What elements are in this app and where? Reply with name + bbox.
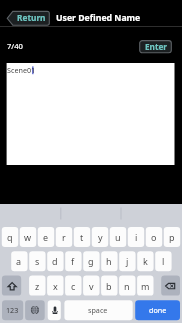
button[interactable]: e <box>38 227 54 247</box>
staticText: z <box>35 280 40 292</box>
button[interactable]: Shift <box>2 276 21 296</box>
staticText: e <box>43 231 49 243</box>
button[interactable]: Dictation <box>48 300 61 320</box>
button[interactable]: k <box>137 251 153 271</box>
staticText: Enter <box>145 41 168 52</box>
button[interactable]: i <box>128 227 144 247</box>
staticText: done <box>149 305 167 315</box>
staticText: space <box>88 305 108 315</box>
staticText: x <box>53 280 58 292</box>
staticText: s <box>35 255 40 267</box>
staticText: 7/40 <box>7 41 23 51</box>
staticText: n <box>124 280 130 292</box>
button[interactable]: Return <box>7 11 50 26</box>
staticText: Scene01 <box>7 65 36 75</box>
button[interactable]: r <box>56 227 72 247</box>
button[interactable]: 123 <box>2 300 23 320</box>
staticText: f <box>71 255 75 267</box>
button[interactable]: g <box>83 251 99 271</box>
button[interactable]: t <box>74 227 90 247</box>
button[interactable]: s <box>29 251 45 271</box>
button[interactable]: u <box>110 227 126 247</box>
staticText: k <box>143 255 148 267</box>
staticText: d <box>52 255 58 267</box>
button[interactable]: space <box>64 300 132 320</box>
button[interactable] <box>7 63 175 165</box>
staticText: v <box>89 280 94 292</box>
button[interactable]: a <box>11 251 27 271</box>
staticText: p <box>169 231 175 243</box>
staticText: u <box>115 231 121 243</box>
staticText: w <box>24 231 32 243</box>
staticText: g <box>88 255 94 267</box>
button[interactable]: q <box>2 227 18 247</box>
button[interactable]: j <box>119 251 135 271</box>
button[interactable]: v <box>83 276 99 296</box>
staticText: 123 <box>6 305 19 315</box>
button[interactable]: h <box>101 251 117 271</box>
staticText: t <box>80 231 84 243</box>
staticText: b <box>106 280 112 292</box>
button[interactable]: m <box>137 276 153 296</box>
button[interactable]: l <box>155 251 171 271</box>
staticText: Return <box>17 12 46 23</box>
button[interactable]: z <box>29 276 45 296</box>
button[interactable]: w <box>20 227 36 247</box>
button[interactable]: f <box>65 251 81 271</box>
button[interactable]: Switch keyboard <box>25 300 45 320</box>
staticText: c <box>71 280 76 292</box>
staticText: i <box>135 231 138 243</box>
staticText: User Defined Name <box>56 12 141 24</box>
staticText: r <box>62 231 66 243</box>
button[interactable]: b <box>101 276 117 296</box>
button[interactable]: x <box>47 276 63 296</box>
staticText: o <box>151 231 157 243</box>
button[interactable]: done <box>135 300 180 320</box>
staticText: y <box>98 231 103 243</box>
button[interactable]: p <box>164 227 180 247</box>
staticText: j <box>126 255 129 267</box>
staticText: l <box>162 255 165 267</box>
button[interactable]: c <box>65 276 81 296</box>
staticText: m <box>141 280 150 292</box>
button[interactable]: y <box>92 227 108 247</box>
button[interactable]: d <box>47 251 63 271</box>
button[interactable]: Enter <box>139 40 172 53</box>
staticText: a <box>16 255 22 267</box>
button[interactable]: n <box>119 276 135 296</box>
button[interactable]: Backspace <box>161 276 180 296</box>
button[interactable]: o <box>146 227 162 247</box>
staticText: q <box>7 231 13 243</box>
staticText: h <box>106 255 112 267</box>
